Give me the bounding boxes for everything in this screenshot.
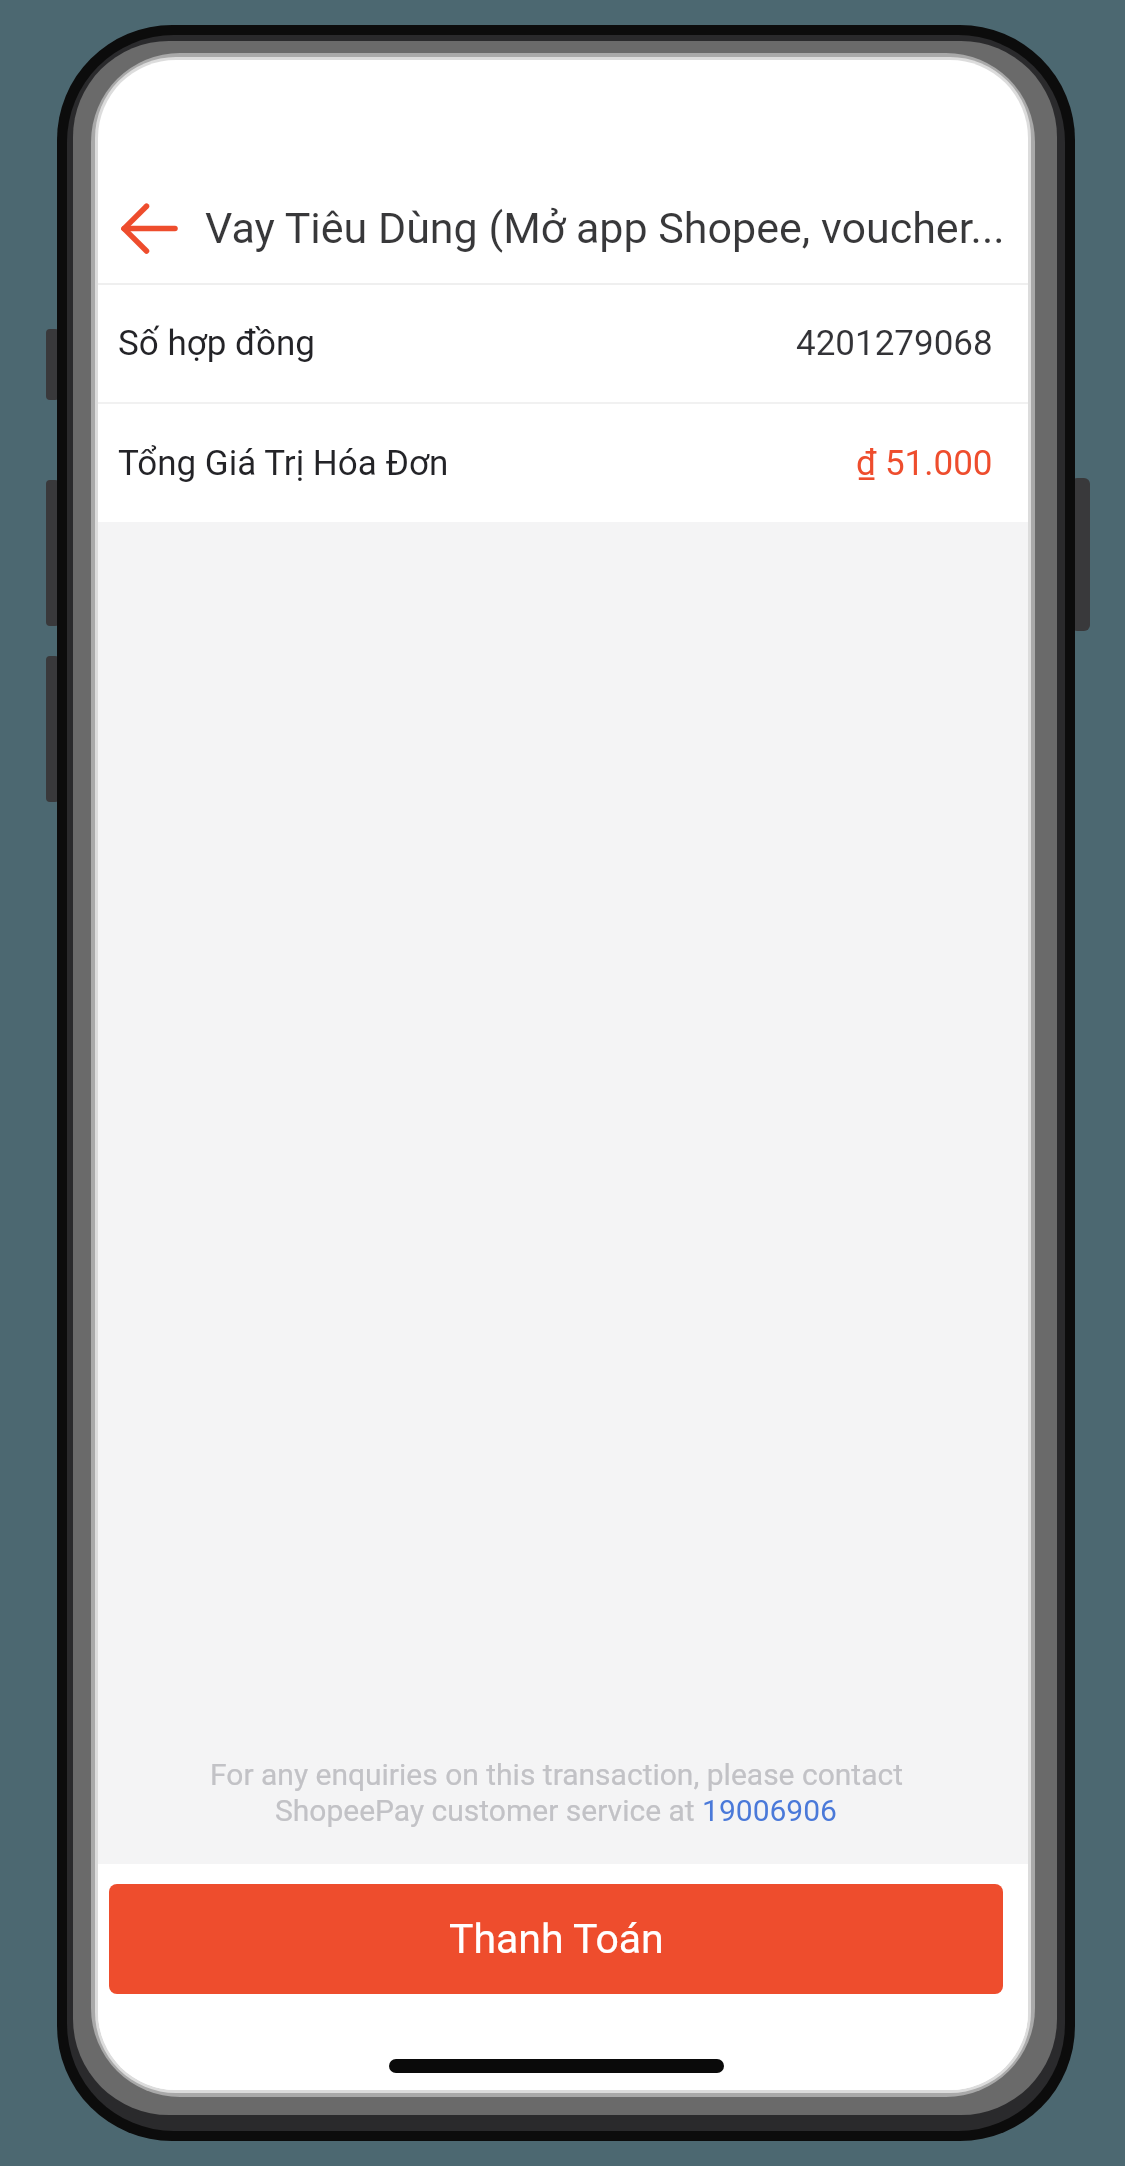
staticText: Số hợp đồng <box>118 323 315 364</box>
staticText: Thanh Toán <box>449 1915 664 1963</box>
button[interactable]: Thanh Toán <box>109 1884 1003 1994</box>
button[interactable] <box>118 200 182 258</box>
staticText: Vay Tiêu Dùng (Mở app Shopee, voucher... <box>205 203 1005 253</box>
staticText: For any enquiries on this transaction, p… <box>210 1757 903 1792</box>
staticText: ₫ 51.000 <box>856 443 993 484</box>
staticText: ShopeePay customer service at 19006906 <box>275 1793 837 1828</box>
staticText: Tổng Giá Trị Hóa Đơn <box>118 443 449 484</box>
staticText: 4201279068 <box>796 323 993 364</box>
